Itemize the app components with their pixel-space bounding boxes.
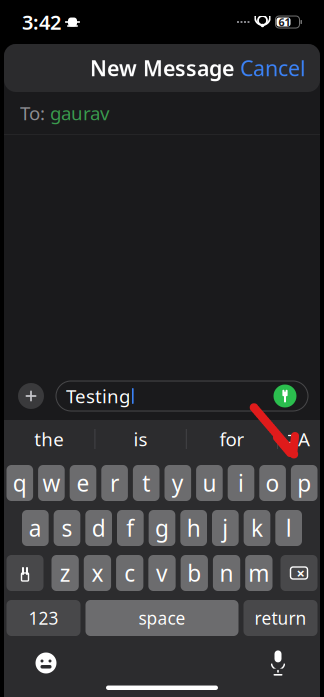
button[interactable]: l (275, 510, 302, 546)
button[interactable]: Emoji (26, 646, 66, 680)
staticText: 123 (28, 606, 58, 629)
button[interactable]: Delete (280, 555, 317, 591)
button[interactable]: for (187, 420, 277, 458)
button[interactable]: m (245, 555, 272, 591)
staticText: x (91, 558, 103, 588)
button[interactable]: Shift (6, 555, 43, 591)
button[interactable]: x (84, 555, 111, 591)
staticText: d (92, 513, 106, 543)
button[interactable]: g (149, 510, 175, 546)
button[interactable]: space (85, 600, 238, 636)
staticText: y (172, 468, 184, 498)
staticText: t (142, 468, 150, 498)
button[interactable]: b (181, 555, 208, 591)
button[interactable]: 123 (6, 600, 80, 636)
button[interactable]: a (22, 510, 49, 546)
staticText: v (156, 558, 168, 588)
button[interactable]: Send (272, 383, 298, 409)
staticText: b (187, 558, 201, 588)
button[interactable]: u (196, 465, 223, 501)
button[interactable]: n (213, 555, 240, 591)
button[interactable]: is (95, 420, 186, 458)
staticText: e (76, 468, 89, 498)
button[interactable]: d (85, 510, 112, 546)
staticText: z (60, 558, 71, 588)
staticText: space (138, 606, 185, 629)
staticText: o (266, 468, 280, 498)
staticText: for (219, 427, 244, 451)
staticText: Cancel (240, 54, 306, 82)
staticText: w (42, 468, 60, 498)
staticText: f (126, 513, 134, 543)
button[interactable]: f (117, 510, 144, 546)
staticText: 3:42 (22, 9, 61, 35)
button[interactable]: z (51, 555, 79, 591)
staticText: Testing (66, 384, 130, 408)
staticText: return (254, 606, 306, 629)
button[interactable]: j (212, 510, 239, 546)
staticText: p (297, 468, 311, 498)
staticText: New Message (90, 54, 234, 82)
button[interactable]: y (164, 465, 191, 501)
button[interactable]: Text formatting (278, 420, 320, 458)
staticText: q (13, 468, 27, 498)
button[interactable]: o (259, 465, 286, 501)
button[interactable]: Cancel (226, 46, 320, 90)
button[interactable]: r (101, 465, 128, 501)
staticText: m (248, 558, 269, 588)
button[interactable]: p (291, 465, 317, 501)
staticText: c (124, 558, 135, 588)
staticText: i (238, 468, 244, 498)
staticText: h (187, 513, 201, 543)
button[interactable]: the (4, 420, 94, 458)
button[interactable]: h (180, 510, 207, 546)
staticText: the (34, 427, 64, 451)
staticText: × (296, 563, 304, 583)
staticText: r (110, 468, 119, 498)
staticText: gaurav (50, 101, 109, 125)
staticText: u (202, 468, 216, 498)
staticText: g (155, 513, 169, 543)
button[interactable]: Add attachment (16, 381, 46, 411)
button[interactable]: e (70, 465, 96, 501)
staticText: s (61, 513, 72, 543)
button[interactable]: s (54, 510, 80, 546)
button[interactable]: k (244, 510, 270, 546)
button[interactable]: t (133, 465, 159, 501)
button[interactable]: v (148, 555, 176, 591)
staticText: is (134, 427, 148, 451)
staticText: k (251, 513, 263, 543)
staticText: n (220, 558, 234, 588)
button[interactable]: c (116, 555, 143, 591)
staticText: l (286, 513, 292, 543)
button[interactable]: Dictation (258, 646, 298, 680)
button[interactable]: i (228, 465, 254, 501)
staticText: j (222, 513, 228, 543)
staticText: To: (20, 101, 45, 125)
staticText: 61 (278, 15, 290, 29)
button[interactable]: q (6, 465, 33, 501)
staticText: A (298, 427, 310, 451)
button[interactable]: w (38, 465, 65, 501)
button[interactable]: return (243, 600, 317, 636)
staticText: a (29, 513, 42, 543)
